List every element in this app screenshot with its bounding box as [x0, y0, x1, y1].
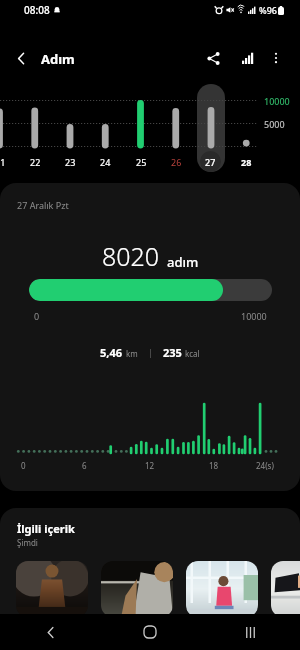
button[interactable]: Related content item	[16, 561, 88, 617]
button[interactable]: Back	[0, 614, 100, 650]
staticText: İlgili içerik	[17, 521, 75, 536]
staticText: 0	[21, 460, 26, 471]
staticText: 10000	[264, 95, 290, 107]
staticText: 28	[241, 156, 252, 168]
staticText: %96	[259, 4, 277, 16]
button[interactable]: Selected day 27	[197, 84, 225, 172]
staticText: 12	[145, 460, 155, 471]
staticText: 18	[209, 460, 219, 471]
staticText: Adım	[41, 50, 75, 68]
button[interactable]: Home	[100, 614, 200, 650]
staticText: 0	[34, 310, 40, 322]
staticText: 5000	[264, 118, 285, 130]
staticText: 6	[82, 460, 87, 471]
staticText: 235	[163, 345, 182, 360]
staticText: 24(s)	[256, 460, 274, 471]
staticText: km	[126, 348, 138, 359]
staticText: 23	[65, 156, 76, 168]
staticText: 27	[205, 156, 216, 168]
button[interactable]: Related content item	[186, 561, 258, 617]
staticText: 8020	[102, 239, 160, 273]
button[interactable]: Share	[201, 46, 225, 70]
staticText: 21	[0, 156, 6, 168]
staticText: 22	[30, 156, 41, 168]
staticText: 24	[100, 156, 111, 168]
staticText: kcal	[185, 348, 200, 359]
staticText: Şimdi	[17, 537, 38, 548]
staticText: 27 Aralık Pzt	[17, 199, 69, 211]
staticText: 10000	[241, 310, 267, 322]
button[interactable]: Recent apps	[200, 614, 300, 650]
button[interactable]: More options	[264, 46, 288, 70]
staticText: 08:08	[24, 3, 50, 17]
staticText: 25	[136, 156, 147, 168]
button[interactable]: Related content item	[101, 561, 173, 617]
button[interactable]: Statistics	[236, 46, 260, 70]
staticText: 5,46	[100, 345, 123, 360]
button[interactable]: Back	[9, 46, 33, 70]
staticText: 26	[171, 156, 182, 168]
button[interactable]: Related content item	[271, 561, 300, 617]
staticText: adım	[167, 253, 199, 271]
